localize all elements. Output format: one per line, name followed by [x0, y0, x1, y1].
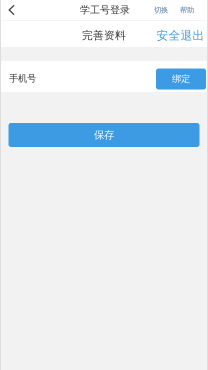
staticText: 手机号 [9, 73, 36, 84]
button[interactable]: 绑定 [156, 68, 206, 89]
staticText: 安全退出 [156, 28, 204, 43]
staticText: 保存 [94, 128, 114, 141]
staticText: 帮助 [180, 5, 194, 15]
staticText: 完善资料 [82, 29, 126, 42]
staticText: 切换 [154, 5, 168, 15]
button[interactable]: 帮助 [179, 2, 195, 18]
button[interactable]: 保存 [8, 123, 199, 147]
staticText: 绑定 [172, 73, 190, 85]
button[interactable]: 安全退出 [156, 24, 204, 44]
button[interactable]: Back [0, 0, 30, 20]
staticText: 学工号登录 [80, 4, 130, 16]
button[interactable]: 切换 [153, 2, 169, 18]
